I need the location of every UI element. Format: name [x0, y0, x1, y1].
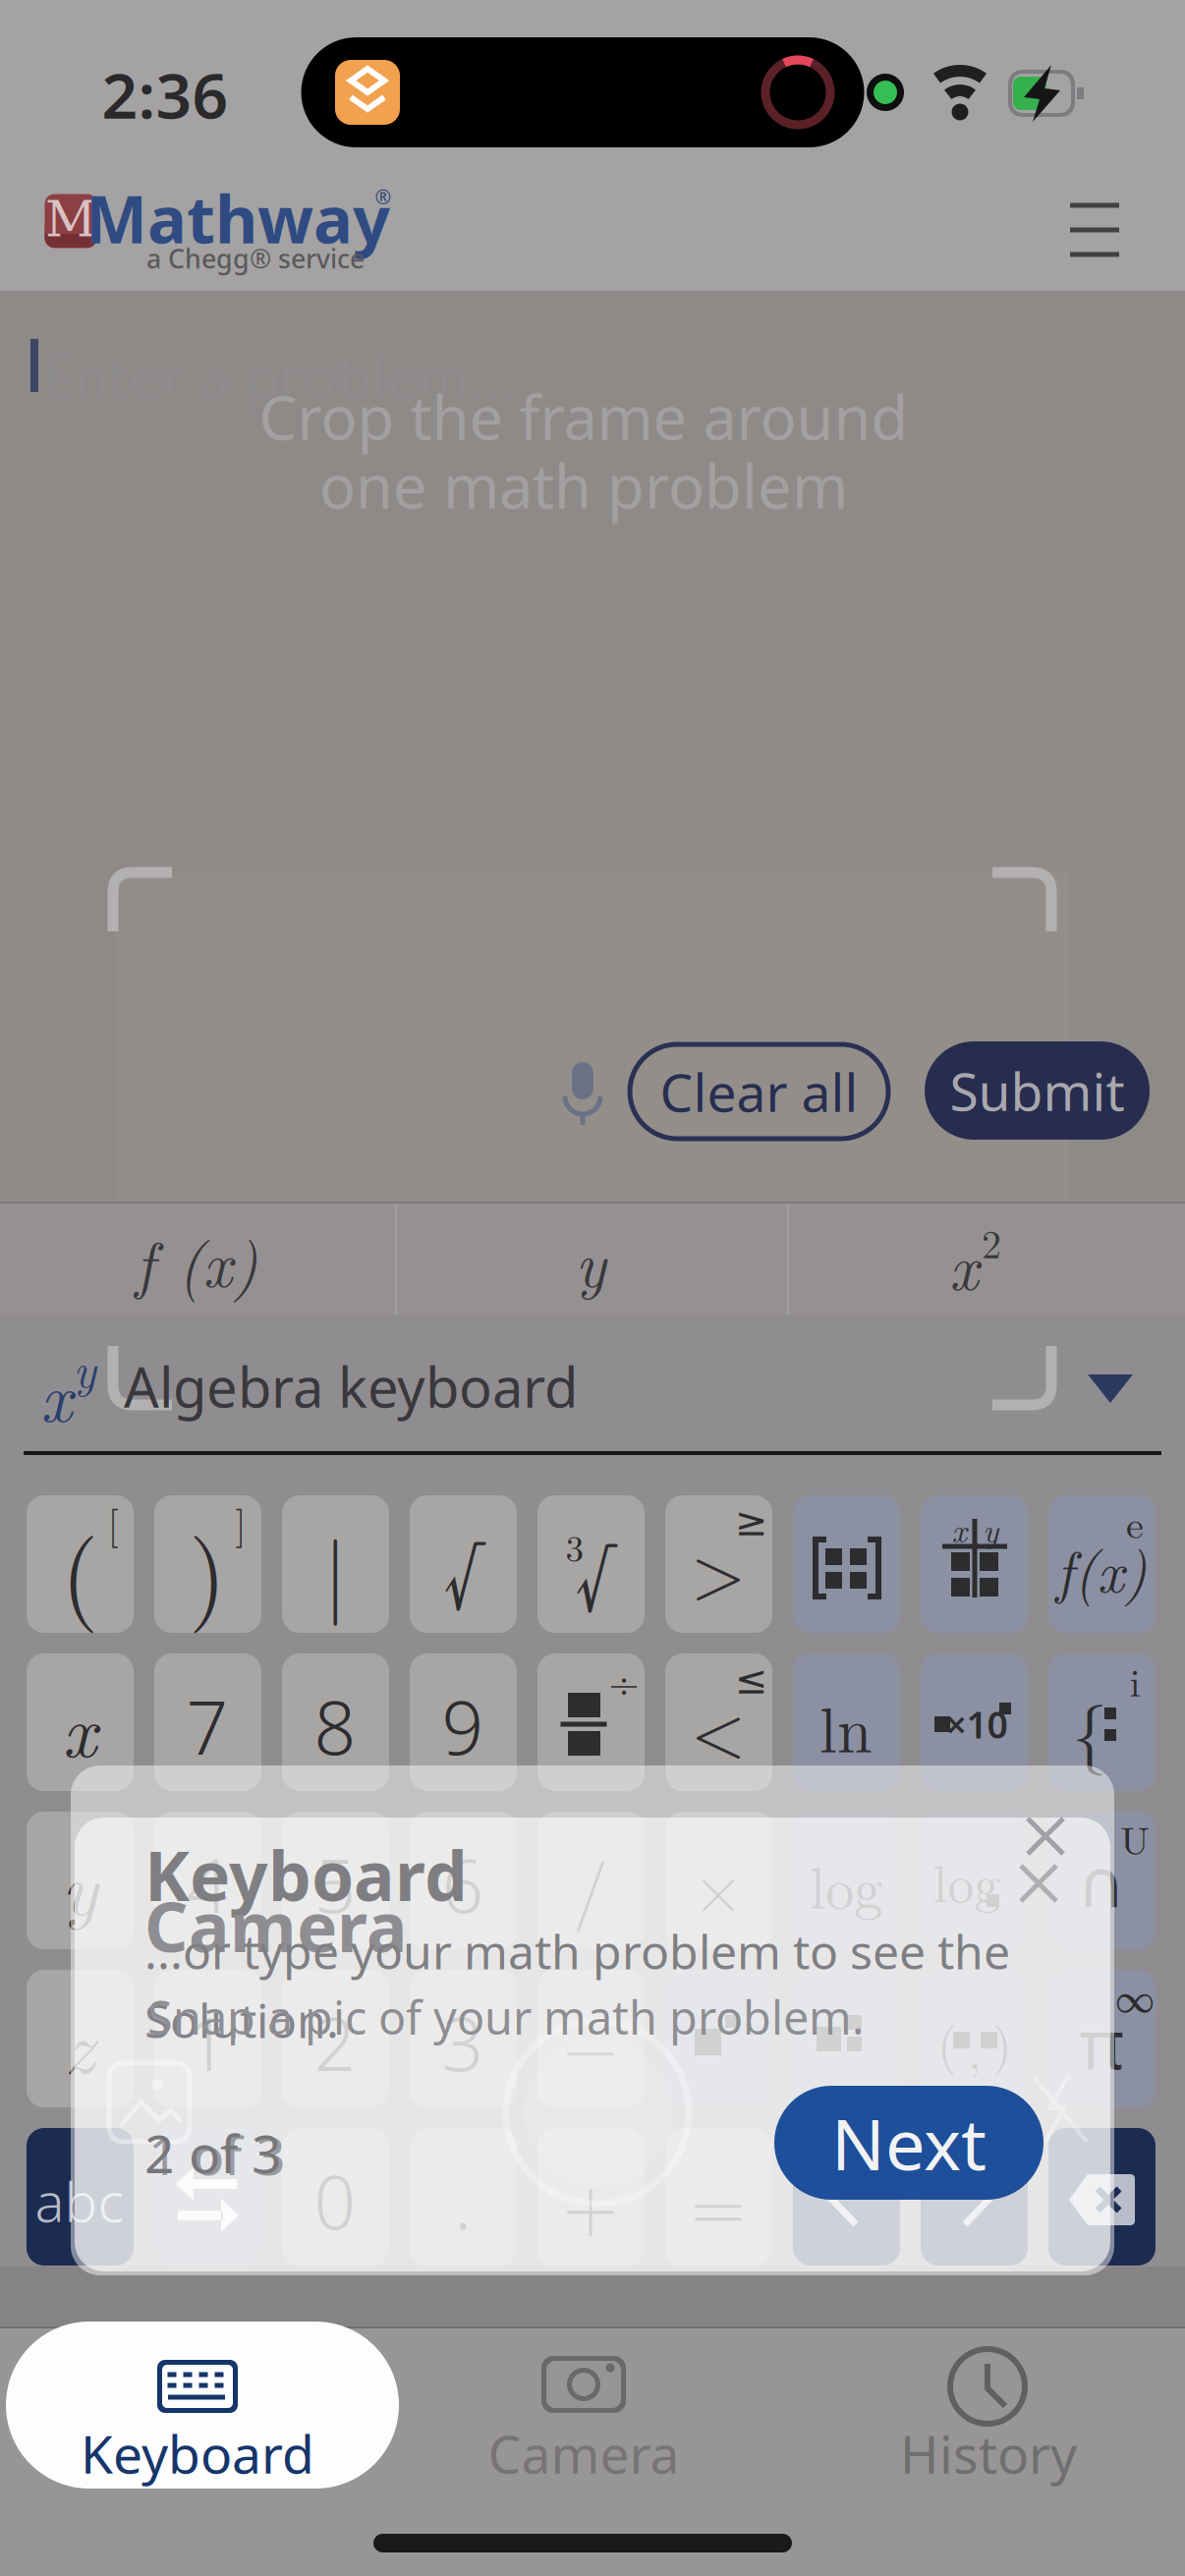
staticText: × [693, 1838, 744, 1931]
button[interactable]: Cube root [537, 1495, 645, 1633]
button[interactable]: 2 [282, 1970, 389, 2107]
staticText: M [45, 190, 96, 248]
button[interactable]: Log base [921, 1812, 1028, 1949]
button[interactable]: Switch [154, 2128, 261, 2266]
button[interactable]: 6 [410, 1812, 517, 1949]
button[interactable]: + [537, 2128, 645, 2266]
button[interactable]: Submit [925, 1041, 1150, 1140]
button[interactable]: ) [154, 1495, 261, 1633]
button[interactable]: < [665, 1653, 772, 1791]
button[interactable]: π [1048, 1970, 1156, 2107]
button[interactable]: √ [410, 1495, 517, 1633]
staticText: Algebra keyboard [124, 1350, 578, 1423]
button[interactable]: ∩ [1048, 1812, 1156, 1949]
staticText: ÷ [609, 1652, 639, 1708]
button[interactable]: Ordered pair [921, 1970, 1028, 2107]
staticText: Solution. [144, 1988, 339, 2051]
button[interactable]: 1 [154, 1970, 261, 2107]
staticText: 1 of 3 [148, 2120, 286, 2190]
staticText: y [983, 1506, 998, 1552]
button[interactable]: Voice input [559, 1061, 606, 1130]
button[interactable]: | [282, 1495, 389, 1633]
staticText: e [1126, 1494, 1144, 1550]
button[interactable]: Table [921, 1495, 1028, 1633]
button[interactable]: Previous [793, 2128, 900, 2266]
button[interactable]: f (x) [10, 1204, 393, 1315]
button[interactable]: Camera [485, 2356, 682, 2513]
staticText: > [691, 1518, 746, 1618]
button[interactable]: y [399, 1204, 782, 1315]
staticText: x [62, 1674, 97, 1778]
button[interactable]: Clear all [630, 1044, 888, 1139]
button[interactable]: Close [1022, 1813, 1069, 1860]
button[interactable]: 5 [282, 1812, 389, 1949]
staticText: History [900, 2418, 1077, 2488]
button[interactable]: − [537, 1970, 645, 2107]
button[interactable]: 3 [410, 1970, 517, 2107]
button[interactable]: abc [27, 2128, 134, 2266]
button[interactable]: Fraction [537, 1653, 645, 1791]
staticText: Crop the frame around [259, 377, 908, 457]
staticText: Keyboard [81, 2418, 314, 2488]
staticText: 1 [186, 1994, 228, 2091]
button[interactable]: Keyboard [6, 2322, 399, 2489]
staticText: z [64, 1991, 95, 2094]
button[interactable]: Matrix [793, 1495, 900, 1633]
button[interactable]: x [792, 1204, 1180, 1315]
button[interactable]: Piecewise [1048, 1653, 1156, 1791]
button[interactable]: 4 [154, 1812, 261, 1949]
staticText: Keyboard [144, 1829, 468, 1920]
staticText: ...or type your math problem to see the [144, 1920, 1010, 1982]
button[interactable]: Menu [1070, 202, 1119, 257]
button[interactable]: Subscript [793, 1970, 900, 2107]
staticText: Clear all [660, 1057, 858, 1126]
button[interactable]: = [665, 2128, 772, 2266]
staticText: ∞ [1115, 1969, 1155, 2024]
staticText: ( [937, 2006, 957, 2077]
button[interactable]: z [27, 1970, 134, 2107]
staticText: i [1129, 1652, 1140, 1708]
staticText: Camera [488, 2418, 679, 2488]
staticText: 6 [442, 1836, 484, 1933]
staticText: y [575, 1216, 606, 1305]
button[interactable]: Scientific notation [921, 1653, 1028, 1791]
button[interactable]: / [537, 1812, 645, 1949]
staticText: 3 [565, 1520, 584, 1572]
button[interactable]: ( [27, 1495, 134, 1633]
button[interactable]: Next [921, 2128, 1028, 2266]
button[interactable]: y [27, 1812, 134, 1949]
button[interactable]: 0 [282, 2128, 389, 2266]
staticText: 9 [442, 1677, 484, 1775]
staticText: ×10 [946, 1700, 1008, 1749]
staticText: ] [235, 1494, 246, 1550]
staticText: + [563, 2151, 618, 2251]
staticText: ln [819, 1682, 873, 1771]
staticText: x [952, 1506, 966, 1552]
button[interactable]: Delete [1048, 2128, 1156, 2266]
staticText: , [968, 2019, 981, 2082]
button[interactable]: 9 [410, 1653, 517, 1791]
button[interactable]: x [27, 1653, 134, 1791]
staticText: 2 [982, 1214, 1001, 1270]
staticText: [ [108, 1494, 118, 1550]
staticText: log [810, 1843, 882, 1925]
button[interactable]: History [889, 2356, 1086, 2513]
button[interactable]: ln [793, 1653, 900, 1791]
staticText: U [1120, 1810, 1150, 1866]
button[interactable]: log [793, 1812, 900, 1949]
staticText: a Chegg® service [146, 241, 365, 276]
button[interactable]: Exponent [665, 1970, 772, 2107]
button[interactable]: 8 [282, 1653, 389, 1791]
button[interactable]: f(x) [1048, 1495, 1156, 1633]
staticText: y [73, 1334, 96, 1401]
staticText: ® [375, 183, 392, 210]
button[interactable]: x [0, 1315, 1185, 1452]
staticText: log [933, 1843, 1001, 1918]
staticText: Mathway [85, 175, 390, 262]
staticText: x [949, 1219, 979, 1308]
button[interactable]: Next [774, 2086, 1044, 2200]
button[interactable]: × [665, 1812, 772, 1949]
button[interactable]: > [665, 1495, 772, 1633]
button[interactable]: 7 [154, 1653, 261, 1791]
